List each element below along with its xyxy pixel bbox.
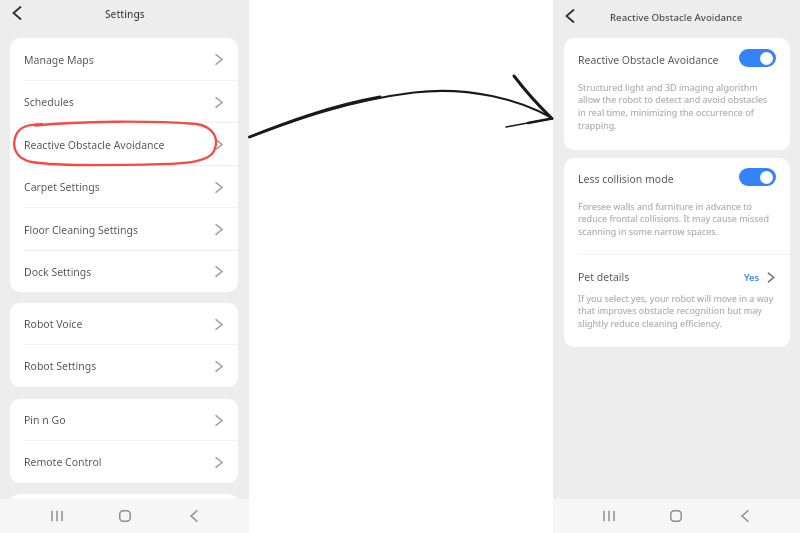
- staticText: Structured light and 3D imaging algorith…: [578, 81, 768, 132]
- button[interactable]: Floor Cleaning Settings: [10, 208, 238, 251]
- staticText: Settings: [105, 7, 145, 21]
- button[interactable]: Carpet Settings: [10, 166, 238, 208]
- staticText: Reactive Obstacle Avoidance: [578, 53, 719, 67]
- staticText: Dock Settings: [24, 265, 92, 279]
- button[interactable]: Back: [710, 499, 778, 533]
- staticText: Robot Settings: [24, 359, 97, 373]
- staticText: Carpet Settings: [24, 180, 100, 194]
- button[interactable]: Home: [91, 499, 159, 533]
- button[interactable]: Home: [642, 499, 710, 533]
- staticText: Less collision mode: [578, 172, 674, 186]
- button[interactable]: Back: [558, 4, 582, 28]
- staticText: Remote Control: [24, 455, 102, 469]
- staticText: Yes: [744, 271, 760, 284]
- staticText: Manage Maps: [24, 53, 94, 67]
- button[interactable]: Robot Settings: [10, 345, 238, 387]
- button[interactable]: Reactive Obstacle Avoidance: [578, 49, 776, 67]
- staticText: Reactive Obstacle Avoidance: [24, 138, 165, 152]
- button[interactable]: Manage Maps: [10, 38, 238, 81]
- button[interactable]: Remote Control: [10, 441, 238, 483]
- staticText: Reactive Obstacle Avoidance: [610, 11, 743, 24]
- button[interactable]: Toggle: [739, 49, 776, 67]
- button[interactable]: Pet details: [578, 270, 776, 284]
- staticText: Floor Cleaning Settings: [24, 223, 138, 237]
- button[interactable]: Recent apps: [575, 499, 642, 533]
- button[interactable]: Less collision mode: [578, 168, 776, 186]
- button[interactable]: Back: [5, 1, 29, 25]
- button[interactable]: Robot Voice: [10, 303, 238, 345]
- button[interactable]: Schedules: [10, 81, 238, 123]
- staticText: Pin n Go: [24, 413, 66, 427]
- button[interactable]: Dock Settings: [10, 251, 238, 292]
- staticText: Robot Voice: [24, 317, 83, 331]
- staticText: If you select yes, your robot will move …: [578, 292, 774, 330]
- staticText: Schedules: [24, 95, 74, 109]
- staticText: Foresee walls and furniture in advance t…: [578, 200, 770, 238]
- button[interactable]: Recent apps: [22, 499, 91, 533]
- button[interactable]: Pin n Go: [10, 399, 238, 441]
- staticText: Pet details: [578, 270, 630, 284]
- button[interactable]: Toggle: [739, 168, 776, 186]
- button[interactable]: Reactive Obstacle Avoidance: [10, 123, 238, 166]
- button[interactable]: Back: [159, 499, 227, 533]
